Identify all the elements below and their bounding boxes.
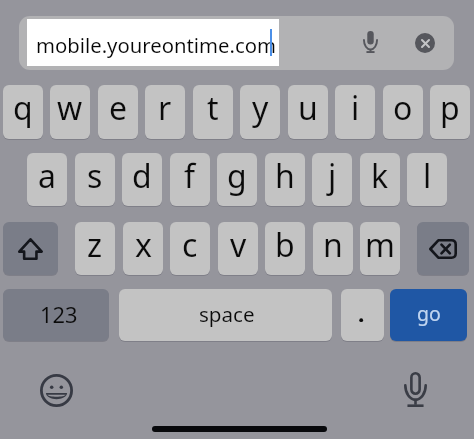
button[interactable]: Shift	[3, 222, 58, 275]
button[interactable]: f	[170, 153, 210, 206]
staticText: i	[351, 86, 360, 130]
button[interactable]: 123	[3, 289, 109, 341]
button[interactable]: c	[170, 222, 210, 275]
button[interactable]: e	[98, 85, 138, 139]
button[interactable]: w	[50, 85, 90, 139]
staticText: l	[423, 154, 432, 198]
button[interactable]: g	[217, 153, 257, 206]
button[interactable]: h	[265, 153, 305, 206]
button[interactable]: a	[27, 153, 67, 206]
staticText: x	[135, 223, 152, 267]
staticText: b	[275, 223, 295, 267]
button[interactable]: v	[218, 222, 258, 275]
button[interactable]: n	[313, 222, 353, 275]
button[interactable]: Clear text	[415, 33, 435, 53]
staticText: e	[109, 86, 128, 130]
staticText: w	[57, 86, 83, 130]
staticText: p	[440, 86, 460, 130]
button[interactable]: r	[145, 85, 185, 139]
staticText: h	[275, 154, 295, 198]
staticText: a	[38, 154, 56, 198]
button[interactable]: Period	[341, 289, 384, 341]
button[interactable]: x	[123, 222, 163, 275]
staticText: r	[158, 86, 172, 130]
button[interactable]: p	[430, 85, 470, 139]
button[interactable]: q	[3, 85, 43, 139]
staticText: t	[207, 86, 219, 130]
button[interactable]: Emoji keyboard	[40, 374, 73, 407]
staticText: q	[13, 86, 33, 130]
button[interactable]: s	[75, 153, 115, 206]
button[interactable]: j	[312, 153, 352, 206]
button[interactable]: Dictation	[403, 371, 427, 407]
staticText: c	[182, 223, 198, 267]
staticText: u	[298, 86, 318, 130]
button[interactable]: b	[265, 222, 305, 275]
staticText: f	[184, 154, 196, 198]
button[interactable]: m	[360, 222, 400, 275]
button[interactable]	[19, 16, 454, 70]
staticText: y	[252, 86, 269, 130]
staticText: mobile.youreontime.com	[36, 31, 276, 59]
button[interactable]: d	[122, 153, 162, 206]
staticText: m	[365, 223, 395, 267]
staticText: s	[87, 154, 103, 198]
button[interactable]: t	[193, 85, 233, 139]
staticText: k	[371, 154, 389, 198]
staticText: go	[417, 300, 441, 327]
button[interactable]: mobile.youreontime.com	[27, 19, 279, 66]
staticText: v	[230, 223, 247, 267]
staticText: j	[328, 154, 337, 198]
staticText: n	[323, 223, 343, 267]
button[interactable]: go	[390, 289, 467, 341]
button[interactable]: o	[383, 85, 423, 139]
staticText: g	[227, 154, 247, 198]
button[interactable]: u	[288, 85, 328, 139]
button[interactable]: l	[407, 153, 447, 206]
staticText: space	[199, 300, 255, 328]
button[interactable]: k	[360, 153, 400, 206]
button[interactable]: Voice search	[355, 26, 385, 58]
staticText: o	[393, 86, 413, 130]
staticText: 123	[40, 300, 78, 330]
button[interactable]: y	[240, 85, 280, 139]
button[interactable]: z	[75, 222, 115, 275]
staticText: z	[87, 223, 103, 267]
staticText: d	[132, 154, 152, 198]
button[interactable]: Backspace	[417, 222, 469, 275]
button[interactable]: space	[119, 289, 332, 341]
button[interactable]: i	[335, 85, 375, 139]
